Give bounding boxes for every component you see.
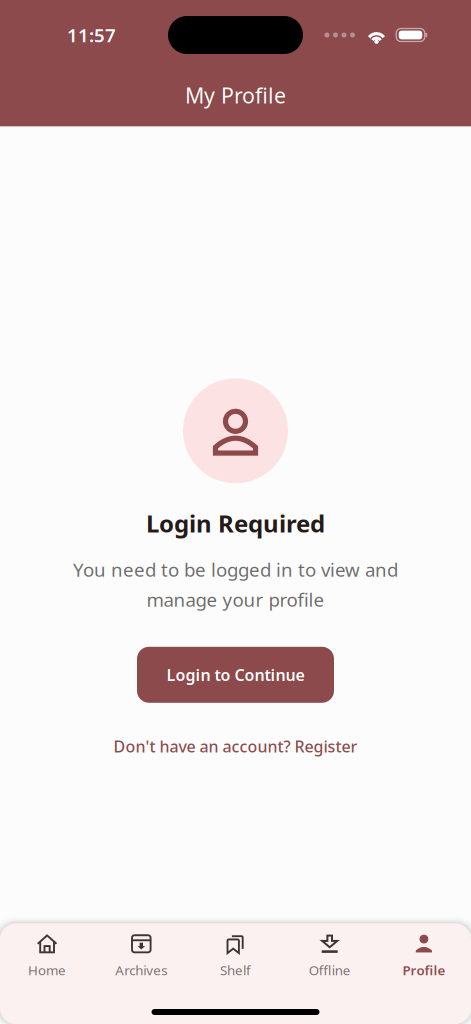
staticText: Archives: [115, 961, 167, 979]
button[interactable]: Shelf: [188, 923, 283, 989]
staticText: Login to Continue: [166, 664, 304, 685]
staticText: Don't have an account? Register: [113, 736, 357, 757]
staticText: 11:57: [67, 23, 116, 47]
button[interactable]: Home: [0, 923, 94, 989]
button[interactable]: Login to Continue: [137, 647, 334, 703]
staticText: Profile: [402, 961, 445, 979]
staticText: Home: [28, 961, 66, 979]
button[interactable]: Archives: [94, 923, 188, 989]
staticText: Login Required: [146, 507, 325, 539]
staticText: Offline: [309, 961, 351, 979]
staticText: Shelf: [220, 961, 251, 979]
button[interactable]: Don't have an account? Register: [105, 730, 365, 763]
staticText: You need to be logged in to view and: [73, 557, 398, 582]
button[interactable]: Offline: [283, 923, 377, 989]
staticText: My Profile: [185, 81, 286, 109]
button[interactable]: Profile: [377, 923, 471, 989]
staticText: manage your profile: [146, 587, 324, 612]
